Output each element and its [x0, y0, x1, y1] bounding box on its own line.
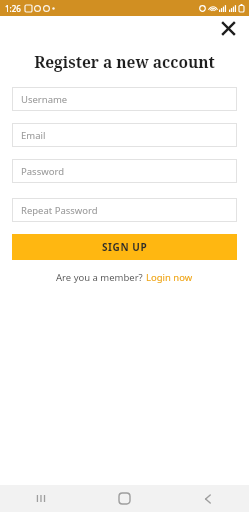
button[interactable]: Home: [83, 485, 166, 512]
button[interactable]: Email: [12, 123, 237, 147]
button[interactable]: SIGN UP: [12, 234, 237, 260]
button[interactable]: Repeat Password: [12, 198, 237, 222]
staticText: Login now: [146, 271, 193, 284]
staticText: Password: [21, 165, 64, 178]
button[interactable]: Back: [166, 485, 249, 512]
button[interactable]: Recent apps: [0, 485, 83, 512]
staticText: Are you a member?: [56, 271, 146, 284]
button[interactable]: Username: [12, 87, 237, 111]
staticText: SIGN UP: [102, 240, 148, 254]
button[interactable]: Login now: [146, 271, 193, 284]
staticText: Username: [21, 93, 68, 106]
staticText: Repeat Password: [21, 204, 98, 217]
button[interactable]: Password: [12, 159, 237, 183]
button[interactable]: Close: [215, 16, 241, 40]
staticText: Email: [21, 129, 46, 142]
staticText: 1:26: [5, 3, 21, 14]
staticText: Register a new account: [0, 51, 249, 72]
